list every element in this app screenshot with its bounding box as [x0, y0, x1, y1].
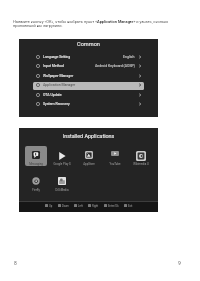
button[interactable]: YouTube — [104, 146, 126, 166]
staticText: DiGiMedia — [51, 188, 73, 191]
staticText: Input Method — [43, 64, 64, 68]
staticText: Нажмите кнопку «ОК», чтобы выбрать пункт… — [13, 19, 183, 28]
button[interactable]: Down — [58, 204, 69, 207]
button[interactable]: Left — [74, 204, 83, 207]
staticText: Google Play S — [51, 162, 73, 165]
button[interactable]: Right — [88, 204, 99, 207]
staticText: Up — [49, 204, 53, 207]
staticText: 9 — [178, 260, 181, 266]
staticText: OTA Update — [43, 93, 62, 97]
staticText: Application Manager — [43, 83, 76, 87]
staticText: Down — [62, 204, 69, 207]
staticText: 8 — [14, 260, 17, 266]
button[interactable]: Language Setting — [19, 55, 158, 65]
button[interactable]: Enter/Ok — [104, 204, 119, 207]
staticText: Wallpaper Manager — [43, 74, 74, 78]
staticText: YouTube — [104, 162, 126, 165]
staticText: Left — [78, 204, 83, 207]
staticText: Wikimedia U — [130, 162, 152, 165]
staticText: Installed Applications — [19, 133, 158, 139]
staticText: Common — [19, 41, 158, 48]
button[interactable]: Wallpaper Manager — [19, 74, 158, 84]
staticText: English — [123, 55, 135, 59]
staticText: System Recovery — [43, 102, 70, 106]
staticText: AppStore — [78, 162, 100, 165]
button[interactable]: DiGiMedia — [51, 172, 73, 192]
button[interactable]: System Recovery — [19, 102, 158, 112]
staticText: Messaging — [25, 162, 47, 165]
button[interactable]: Google Play S — [51, 146, 73, 166]
button[interactable]: Firefly — [25, 172, 47, 192]
button[interactable]: Wikimedia U — [130, 146, 152, 166]
staticText: Android Keyboard (AOSP) — [95, 64, 135, 68]
staticText: Firefly — [25, 188, 47, 191]
staticText: Right — [92, 204, 99, 207]
staticText: Exit — [128, 204, 133, 207]
staticText: Enter/Ok — [108, 204, 119, 207]
button[interactable]: AppStore — [78, 146, 100, 166]
button[interactable]: OTA Update — [19, 93, 158, 103]
button[interactable]: Messaging — [25, 146, 47, 166]
button[interactable]: Up — [45, 204, 53, 207]
button[interactable]: Application Manager — [19, 83, 158, 93]
staticText: Language Setting — [43, 55, 71, 59]
button[interactable]: Exit — [124, 204, 133, 207]
button[interactable]: Input Method — [19, 64, 158, 74]
